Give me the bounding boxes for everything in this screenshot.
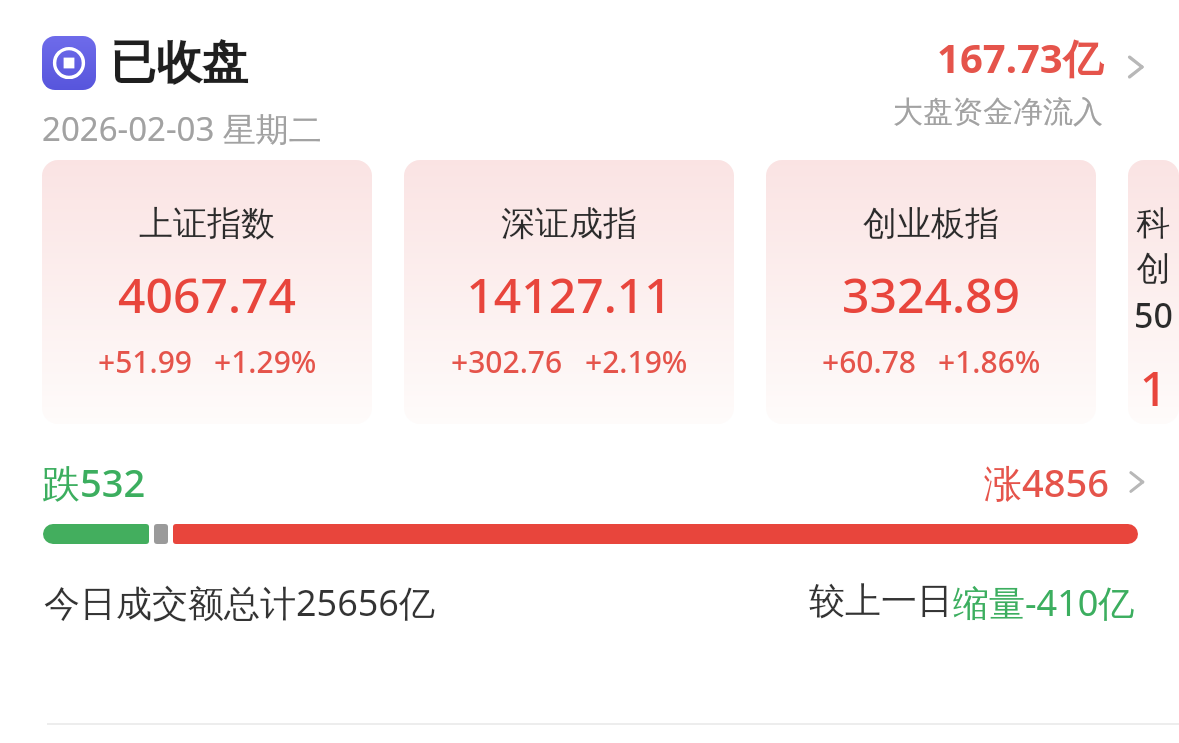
staticText: 大盘资金净流入 — [893, 93, 1103, 131]
staticText: 1120.00 — [1128, 355, 1179, 424]
button[interactable]: 上证指数 — [42, 160, 372, 424]
staticText: 跌532 — [42, 456, 146, 508]
staticText: 今日成交额总计25656亿 — [44, 578, 435, 627]
staticText: +1.29% — [214, 341, 317, 382]
staticText: 科创50 — [1128, 202, 1179, 338]
staticText: 14127.11 — [466, 262, 672, 327]
staticText: +2.19% — [585, 341, 688, 382]
staticText: 167.73亿 — [937, 30, 1103, 85]
button[interactable]: 深证成指 — [404, 160, 734, 424]
button[interactable]: 167.73亿 — [893, 30, 1155, 131]
other: Market closed — [42, 36, 96, 90]
staticText: 4067.74 — [118, 262, 296, 327]
staticText: +51.99 — [98, 341, 192, 382]
staticText: 涨4856 — [984, 456, 1109, 508]
staticText: 上证指数 — [139, 202, 275, 245]
staticText: 创业板指 — [863, 202, 999, 245]
staticText: 较上一日 — [809, 578, 953, 623]
staticText: 已收盘 — [110, 34, 248, 92]
staticText: +302.76 — [451, 341, 563, 382]
button[interactable] — [43, 524, 1138, 544]
button[interactable]: 科创50 — [1128, 160, 1179, 424]
staticText: 深证成指 — [501, 202, 637, 245]
staticText: +60.78 — [822, 341, 916, 382]
staticText: 3324.89 — [842, 262, 1020, 327]
staticText: 2026-02-03 星期二 — [42, 106, 322, 151]
staticText: +1.86% — [938, 341, 1041, 382]
button[interactable]: 跌532 — [42, 456, 1155, 508]
button[interactable]: 创业板指 — [766, 160, 1096, 424]
staticText: 缩量-410亿 — [953, 578, 1135, 627]
